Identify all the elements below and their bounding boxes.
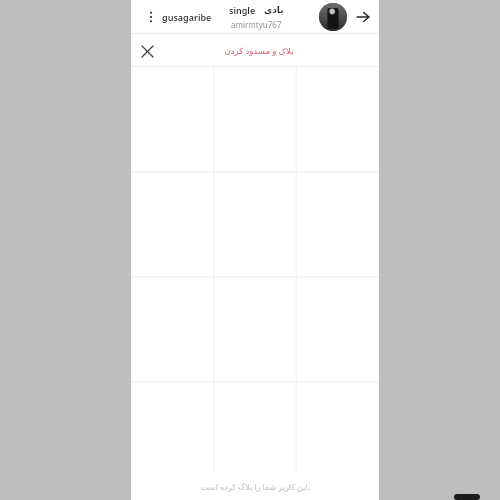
button[interactable]: Profile photo <box>319 3 347 31</box>
staticText: single <box>229 4 256 16</box>
staticText: بلاک و مسدود کردن <box>224 45 294 57</box>
button[interactable]: More options <box>140 6 162 28</box>
button[interactable]: بلاک و مسدود کردن <box>224 45 294 57</box>
button[interactable]: Next <box>351 5 375 29</box>
staticText: amirmtyu767 <box>231 19 282 30</box>
staticText: gusagaribe <box>162 11 212 23</box>
staticText: بادی <box>264 5 284 15</box>
button[interactable]: Close <box>135 39 159 63</box>
staticText: این کاربر شما را بلاک کرده است. <box>201 481 310 492</box>
